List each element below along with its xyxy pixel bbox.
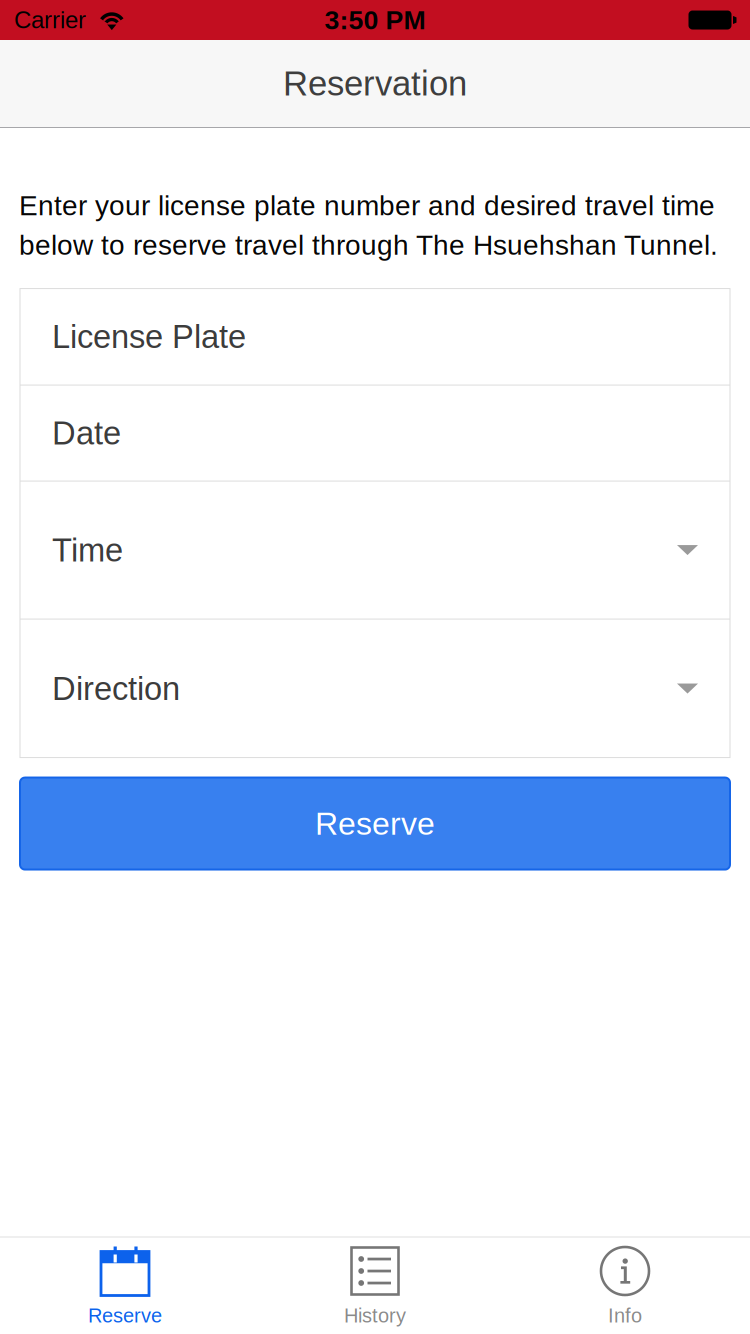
staticText: Reserve bbox=[88, 1304, 162, 1327]
button[interactable]: Date bbox=[20, 386, 730, 481]
staticText: History bbox=[344, 1304, 406, 1327]
button[interactable]: History bbox=[250, 1237, 500, 1334]
staticText: Direction bbox=[52, 670, 180, 707]
staticText: Info bbox=[608, 1304, 642, 1327]
button[interactable]: Time bbox=[20, 482, 730, 619]
button[interactable]: Reserve bbox=[20, 778, 730, 870]
button[interactable]: License Plate bbox=[20, 289, 730, 385]
staticText: Carrier bbox=[14, 7, 86, 33]
button[interactable]: Reserve bbox=[0, 1237, 250, 1334]
staticText: Time bbox=[52, 532, 123, 568]
staticText: License Plate bbox=[52, 318, 246, 355]
staticText: Date bbox=[52, 415, 121, 451]
staticText: Enter your license plate number and desi… bbox=[19, 190, 718, 261]
staticText: 3:50 PM bbox=[324, 5, 425, 35]
button[interactable]: Direction bbox=[20, 620, 730, 758]
button[interactable]: Info bbox=[500, 1237, 750, 1334]
staticText: Reserve bbox=[315, 806, 435, 841]
staticText: Reservation bbox=[283, 64, 467, 103]
